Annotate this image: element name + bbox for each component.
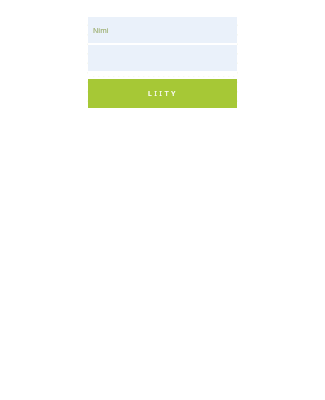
button[interactable]: LIITY (88, 79, 237, 108)
staticText: Nimi (93, 26, 109, 36)
staticText: LIITY (148, 89, 178, 99)
button[interactable]: Nimi (88, 17, 237, 43)
